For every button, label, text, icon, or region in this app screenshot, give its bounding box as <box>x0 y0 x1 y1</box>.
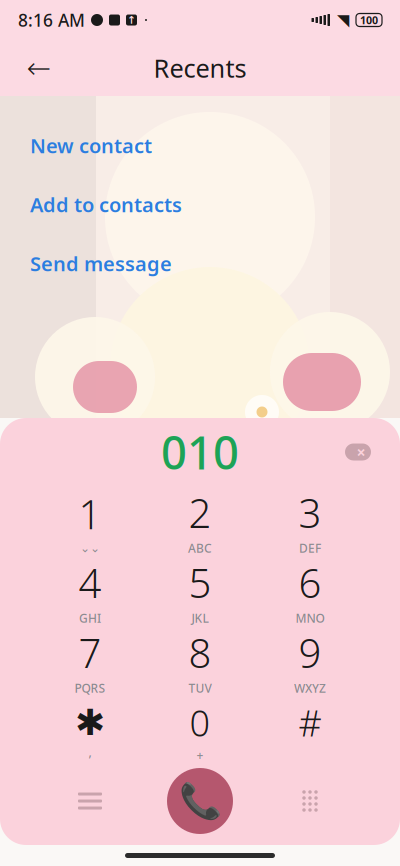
button[interactable]: 0 <box>145 696 255 766</box>
staticText: ◥ <box>337 11 349 29</box>
button[interactable]: Keypad <box>255 768 365 834</box>
staticText: 8 <box>188 626 211 679</box>
button[interactable]: 1 <box>35 486 145 556</box>
staticText: ABC <box>188 540 212 556</box>
staticText: ⌄⌄ <box>80 541 100 555</box>
staticText: ← <box>26 51 51 85</box>
button[interactable]: # <box>255 696 365 766</box>
staticText: WXYZ <box>294 680 326 696</box>
staticText: Send message <box>30 250 172 277</box>
button[interactable]: 2 <box>145 486 255 556</box>
staticText: ↑ <box>127 14 136 26</box>
staticText: MNO <box>295 610 324 626</box>
staticText: 8:16 AM <box>18 8 85 31</box>
staticText: 3 <box>298 486 321 539</box>
button[interactable]: Delete <box>336 430 380 474</box>
button[interactable]: Call <box>145 768 255 834</box>
button[interactable]: ✱ <box>35 696 145 766</box>
staticText: + <box>196 747 203 763</box>
staticText: 1 <box>78 487 101 540</box>
button[interactable]: 6 <box>255 556 365 626</box>
button[interactable]: 7 <box>35 626 145 696</box>
button[interactable]: Add to contacts <box>0 175 400 234</box>
button[interactable]: 8 <box>145 626 255 696</box>
staticText: GHI <box>79 610 101 626</box>
staticText: PQRS <box>74 680 105 696</box>
staticText: × <box>356 441 365 463</box>
staticText: 9 <box>298 626 321 679</box>
button[interactable]: 9 <box>255 626 365 696</box>
staticText: New contact <box>30 132 152 159</box>
staticText: Add to contacts <box>30 191 182 218</box>
staticText: TUV <box>188 680 211 696</box>
staticText: DEF <box>299 540 321 556</box>
button[interactable]: 5 <box>145 556 255 626</box>
staticText: 📞 <box>178 781 221 821</box>
staticText: 7 <box>78 626 101 679</box>
staticText: 5 <box>188 556 211 609</box>
staticText: , <box>88 744 91 760</box>
button[interactable]: Send message <box>0 234 400 293</box>
staticText: Recents <box>153 51 246 85</box>
staticText: 4 <box>78 556 101 609</box>
staticText: 0 <box>189 699 210 746</box>
button[interactable]: Call log <box>35 768 145 834</box>
button[interactable]: Back <box>17 46 61 90</box>
staticText: 010 <box>161 422 239 482</box>
staticText: 2 <box>188 486 211 539</box>
staticText: ✱ <box>75 702 105 743</box>
staticText: 100 <box>360 13 378 27</box>
staticText: # <box>298 699 321 746</box>
button[interactable]: 3 <box>255 486 365 556</box>
staticText: JKL <box>191 610 208 626</box>
button[interactable]: 4 <box>35 556 145 626</box>
staticText: 6 <box>298 556 321 609</box>
button[interactable]: New contact <box>0 116 400 175</box>
